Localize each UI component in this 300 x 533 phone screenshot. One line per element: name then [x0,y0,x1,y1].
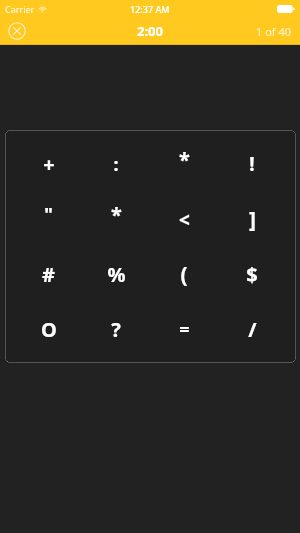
button[interactable]: O [15,302,82,357]
button[interactable]: = [150,302,218,357]
staticText: ] [249,205,256,234]
staticText: " [44,202,53,227]
staticText: # [42,261,55,288]
staticText: < [179,207,190,233]
staticText: * [111,201,122,228]
button[interactable]: ] [218,192,286,247]
button[interactable]: # [15,247,82,302]
button[interactable]: ( [150,247,218,302]
staticText: + [43,151,55,178]
button[interactable]: < [150,192,218,247]
staticText: Carrier [5,3,35,15]
button[interactable]: ? [82,302,150,357]
button[interactable]: ! [218,136,286,192]
button[interactable]: % [82,247,150,302]
staticText: 1 of 40 [256,24,292,39]
staticText: O [41,316,57,343]
staticText: = [179,317,190,342]
button[interactable]: * [82,192,150,247]
staticText: : [113,152,119,177]
staticText: 12:37 AM [130,3,170,15]
button[interactable]: * [150,136,218,192]
button[interactable]: : [82,136,150,192]
staticText: ? [111,316,121,343]
button[interactable]: / [218,302,286,357]
button[interactable]: Close [6,20,28,42]
staticText: ( [180,260,188,289]
button[interactable]: " [15,192,82,247]
button[interactable]: + [15,136,82,192]
staticText: * [179,146,190,173]
staticText: $ [246,261,258,288]
staticText: % [107,261,126,288]
staticText: 2:00 [137,22,163,40]
staticText: ! [249,151,255,177]
button[interactable]: $ [218,247,286,302]
staticText: / [248,316,257,343]
